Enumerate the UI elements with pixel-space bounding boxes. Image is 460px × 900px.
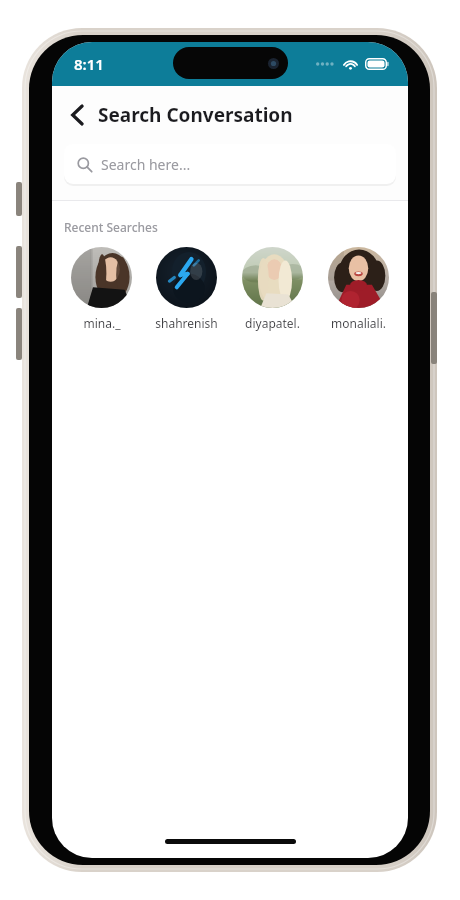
staticText: Recent Searches [64,219,158,235]
staticText: diyapatel. [245,315,300,331]
button[interactable]: shahrenish [147,247,226,331]
staticText: shahrenish [155,315,218,331]
staticText: 8:11 [74,54,104,74]
button[interactable]: monaliali. [318,247,398,331]
staticText: Search Conversation [98,102,293,128]
button[interactable]: Back [62,100,92,130]
button[interactable]: Search here... [64,144,396,184]
staticText: monaliali. [331,315,386,331]
button[interactable]: diyapatel. [232,247,312,331]
button[interactable]: mina._ [62,247,141,331]
staticText: mina._ [83,315,121,331]
staticText: Search here... [101,155,191,174]
